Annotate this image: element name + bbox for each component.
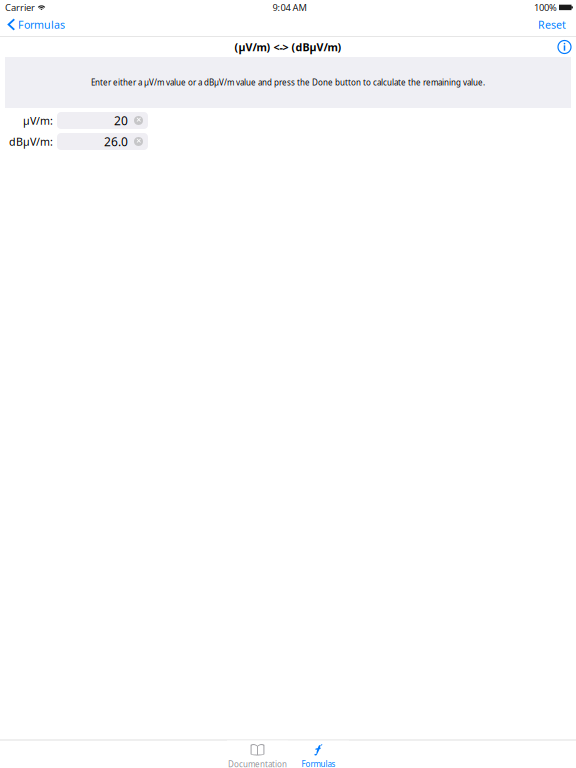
staticText: Formulas (18, 17, 65, 32)
button[interactable]: Reset (530, 15, 574, 36)
staticText: 100% (534, 1, 557, 14)
staticText: µV/m: (23, 113, 53, 128)
button[interactable]: Info (555, 37, 574, 56)
button[interactable]: Formulas (0, 15, 71, 36)
button[interactable]: 26.0 (57, 133, 148, 150)
staticText: Documentation (228, 759, 287, 768)
button[interactable]: Documentation (227, 741, 288, 768)
staticText: Enter either a µV/m value or a dBµV/m va… (91, 77, 485, 88)
staticText: 20 (114, 112, 128, 128)
staticText: 9:04 AM (272, 1, 306, 14)
staticText: dBµV/m: (9, 134, 53, 149)
staticText: (µV/m) <-> (dBµV/m) (234, 40, 341, 54)
staticText: Formulas (301, 759, 335, 768)
button[interactable]: Formulas (288, 741, 349, 768)
staticText: 26.0 (104, 133, 128, 149)
staticText: Reset (538, 17, 566, 32)
button[interactable]: 20 (57, 112, 148, 129)
staticText: Carrier (5, 1, 35, 14)
